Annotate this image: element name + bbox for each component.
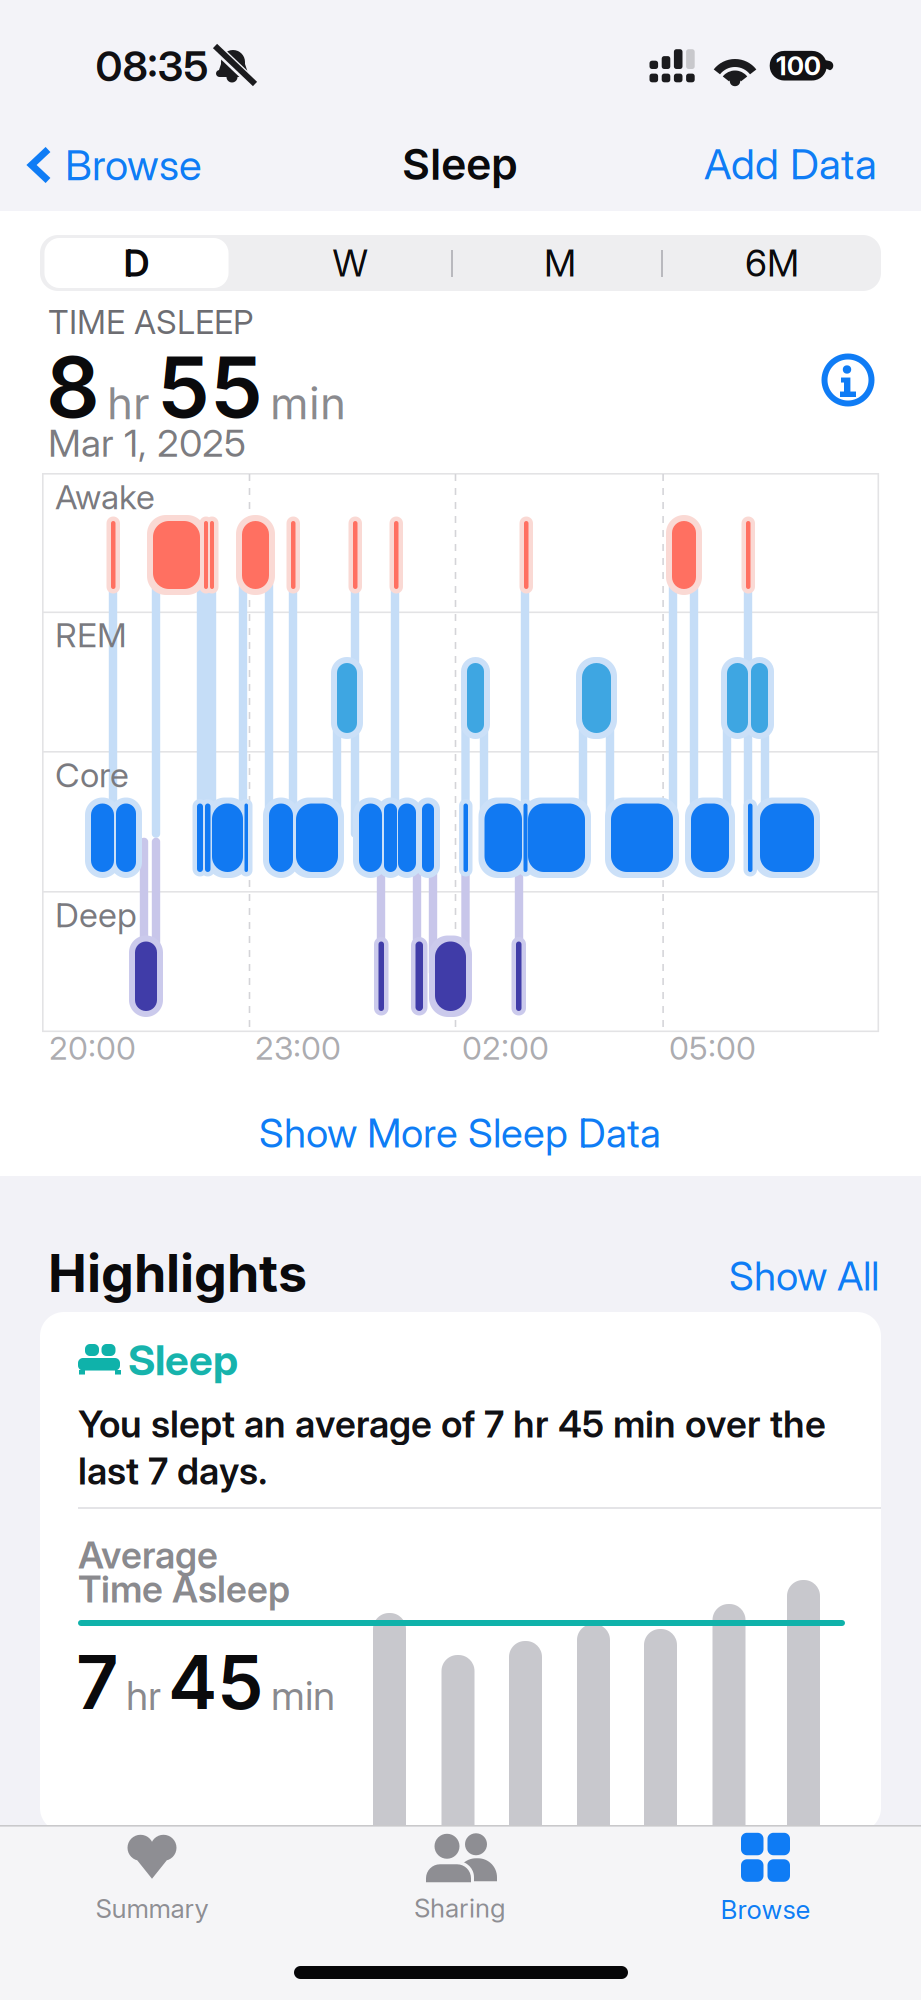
staticText: 100 [776,50,821,81]
staticText: min [270,377,346,430]
staticText: Deep [55,894,137,935]
staticText: Mar 1, 2025 [48,420,246,466]
staticText: Sharing [414,1892,506,1924]
staticText: Sleep [128,1335,238,1385]
button[interactable]: W [260,238,440,288]
staticText: 20:00 [49,1029,136,1067]
staticText: 6M [745,241,799,285]
staticText: W [332,241,367,285]
staticText: Show More Sleep Data [259,1109,661,1157]
staticText: 55 [157,336,263,438]
staticText: hr [126,1671,161,1720]
staticText: Summary [95,1893,208,1924]
staticText: Highlights [48,1241,307,1304]
staticText: Show All [729,1252,879,1300]
staticText: M [544,241,576,285]
staticText: last 7 days. [78,1449,267,1493]
button[interactable]: M [470,238,650,288]
button[interactable]: Show All [729,1252,879,1300]
button[interactable]: D [44,238,228,288]
staticText: REM [55,614,127,655]
staticText: TIME ASLEEP [48,302,254,342]
staticText: 7 [76,1637,119,1727]
staticText: 05:00 [669,1029,756,1067]
staticText: Average [78,1533,218,1577]
staticText: min [271,1671,335,1720]
staticText: 02:00 [462,1029,549,1067]
button[interactable]: Summary [95,1834,208,1924]
button[interactable] [821,353,875,407]
staticText: 45 [168,1637,264,1727]
staticText: Browse [65,140,202,190]
staticText: 8 [46,336,100,438]
staticText: Browse [720,1894,810,1925]
staticText: Time Asleep [78,1567,290,1611]
button[interactable]: Add Data [477,134,877,194]
staticText: 08:35 [95,41,208,91]
staticText: You slept an average of 7 hr 45 min over… [78,1402,826,1446]
staticText: hr [107,377,150,430]
button[interactable]: Browse [720,1833,810,1925]
staticText: 23:00 [255,1029,341,1067]
button[interactable]: 6M [682,238,862,288]
staticText: Add Data [704,139,877,189]
staticText: D [123,241,149,285]
button[interactable]: Show More Sleep Data [259,1109,661,1157]
button[interactable]: Browse [28,135,428,195]
staticText: Sleep [402,138,518,190]
staticText: Awake [55,476,155,517]
staticText: Core [55,754,129,795]
button[interactable]: Sharing [414,1832,506,1924]
button[interactable]: Sleep [40,1312,881,1832]
